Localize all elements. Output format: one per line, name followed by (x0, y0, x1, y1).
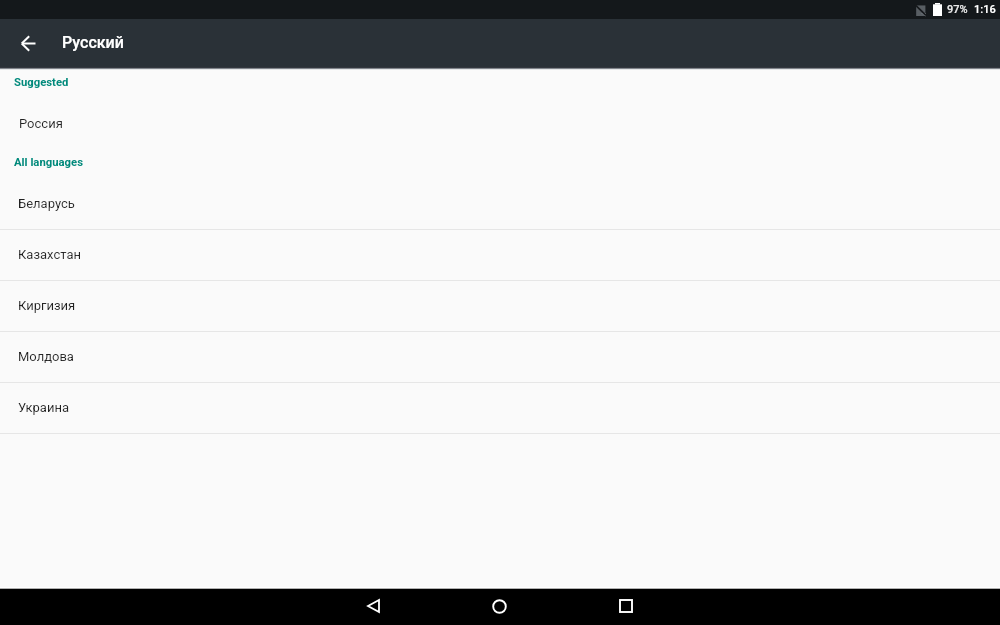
staticText: Беларусь (18, 196, 75, 211)
button[interactable]: Молдова (0, 332, 1000, 382)
button[interactable]: Казахстан (0, 230, 1000, 280)
staticText: 97% (947, 3, 968, 16)
staticText: Казахстан (18, 247, 81, 262)
staticText: Молдова (18, 349, 74, 364)
staticText: Украина (18, 400, 69, 415)
staticText: 1:16 (974, 3, 996, 16)
button[interactable]: Украина (0, 383, 1000, 433)
staticText: All languages (14, 156, 83, 169)
button[interactable]: Беларусь (0, 179, 1000, 229)
button[interactable]: Back (349, 587, 397, 625)
staticText: Русский (62, 33, 124, 52)
staticText: Россия (19, 116, 63, 131)
button[interactable]: Киргизия (0, 281, 1000, 331)
button[interactable]: Navigate up (4, 19, 52, 67)
button[interactable]: Home (475, 587, 523, 625)
staticText: Киргизия (18, 298, 76, 313)
button[interactable]: Россия (0, 99, 1000, 150)
button[interactable]: Recent apps (602, 587, 650, 625)
staticText: Suggested (14, 76, 69, 89)
